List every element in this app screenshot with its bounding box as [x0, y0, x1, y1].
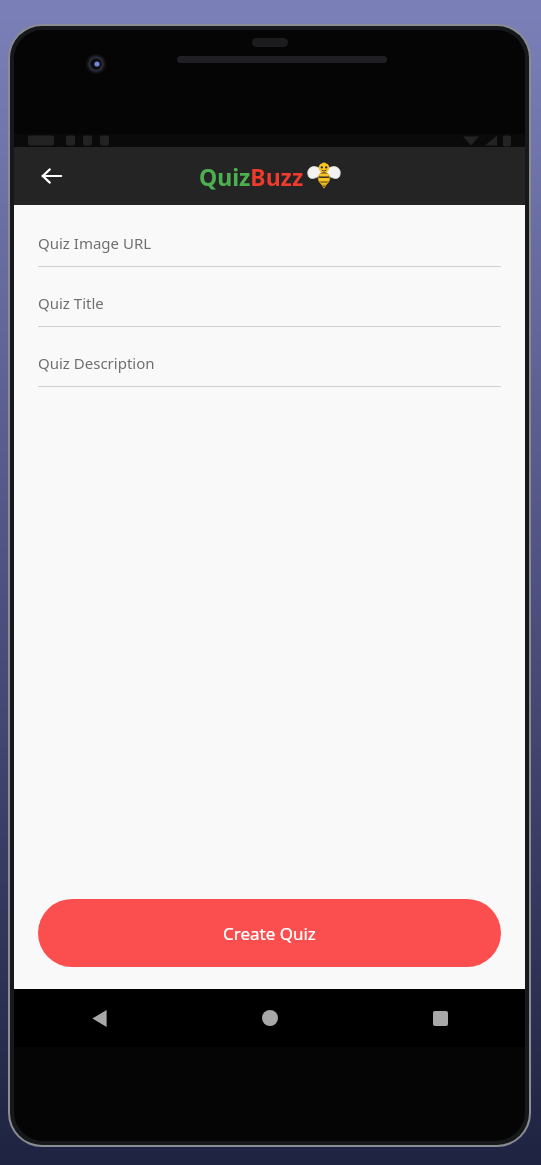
button[interactable]: Back	[14, 989, 185, 1047]
staticText: Quiz Image URL	[38, 233, 152, 253]
button[interactable]: Create Quiz	[38, 899, 501, 967]
staticText: QuizBuzz	[199, 161, 304, 192]
button[interactable]: Quiz Image URL	[14, 219, 525, 279]
button[interactable]: Home	[185, 989, 355, 1047]
button[interactable]: Quiz Title	[14, 279, 525, 339]
staticText: Quiz Description	[38, 353, 155, 373]
staticText: Create Quiz	[223, 922, 316, 945]
button[interactable]: Quiz Description	[14, 339, 525, 399]
button[interactable]: Recent apps	[355, 989, 525, 1047]
button[interactable]: Back	[30, 154, 74, 198]
staticText: Quiz Title	[38, 293, 104, 313]
